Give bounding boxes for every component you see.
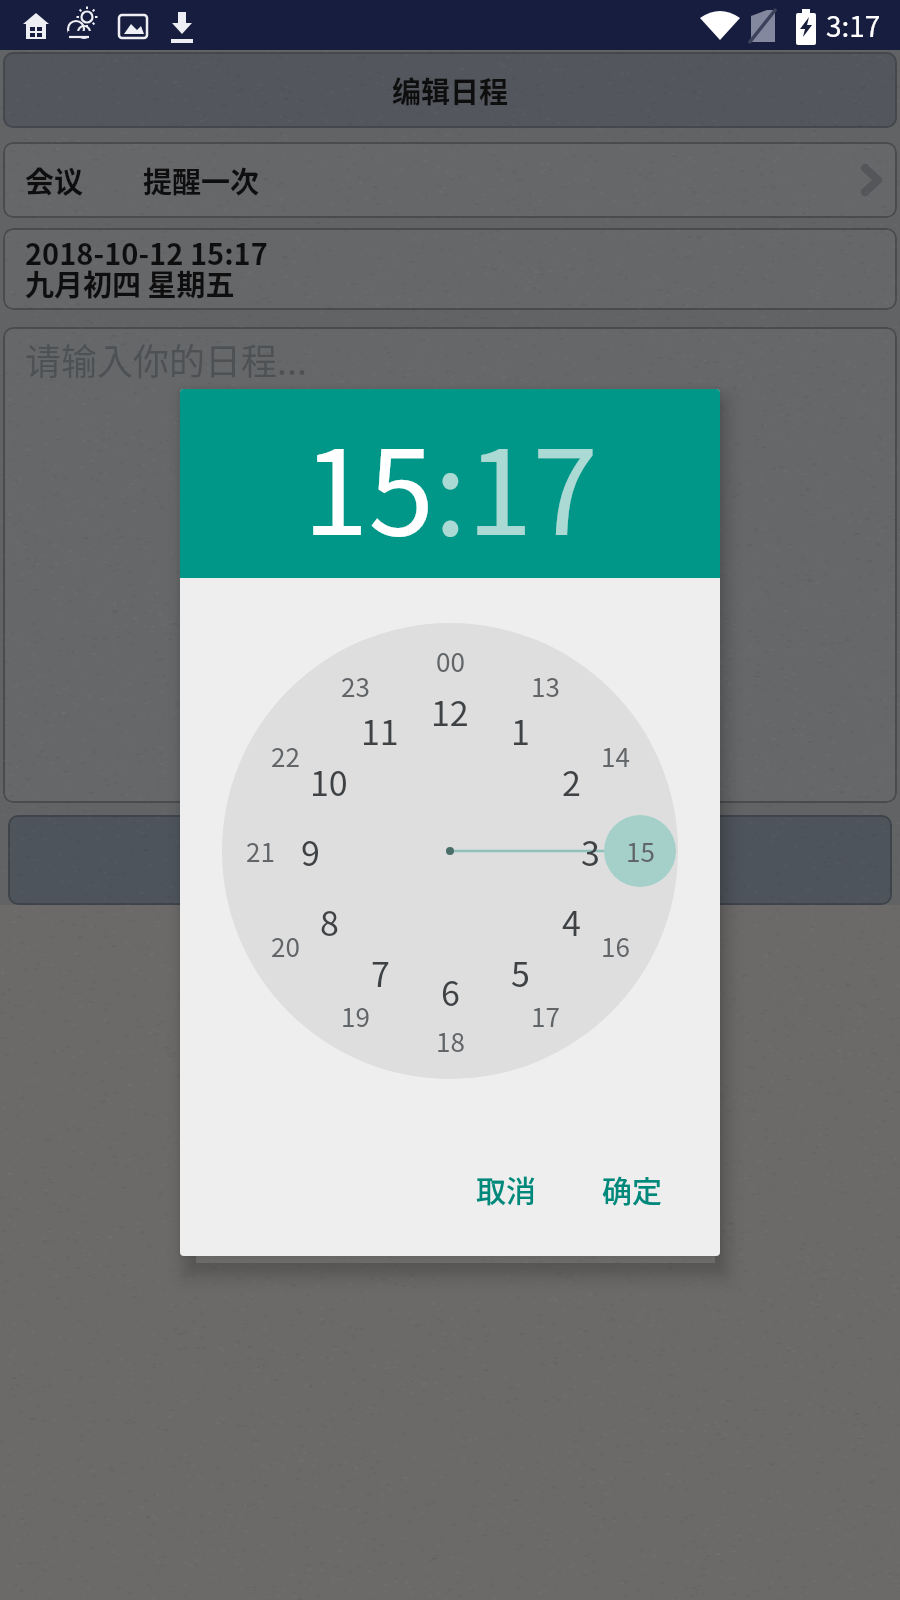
- staticText: 20: [271, 927, 300, 965]
- staticText: 4: [562, 897, 581, 945]
- staticText: 编辑日程: [392, 69, 509, 111]
- staticText: 1: [511, 706, 530, 754]
- staticText: 2: [562, 757, 581, 805]
- staticText: :: [434, 398, 467, 569]
- button[interactable]: 确定: [594, 1161, 670, 1216]
- staticText: 14: [601, 737, 630, 775]
- staticText: 九月初四 星期五: [25, 262, 235, 304]
- staticText: 取消: [476, 1167, 536, 1210]
- staticText: 7: [371, 948, 390, 996]
- staticText: 12: [431, 687, 469, 735]
- staticText: 17: [531, 997, 560, 1035]
- staticText: 10: [310, 757, 348, 805]
- staticText: 9: [301, 827, 320, 875]
- staticText: 3:17: [826, 5, 881, 46]
- staticText: 15: [303, 398, 434, 569]
- button[interactable]: 2018-10-12 15:17: [3, 228, 897, 310]
- staticText: 8: [320, 897, 339, 945]
- staticText: 11: [361, 706, 399, 754]
- staticText: 18: [436, 1022, 465, 1060]
- staticText: 13: [531, 667, 560, 705]
- staticText: 5: [511, 948, 530, 996]
- staticText: 会议: [25, 159, 84, 201]
- staticText: 19: [341, 997, 370, 1035]
- staticText: 请输入你的日程...: [25, 333, 308, 385]
- button[interactable]: [8, 815, 892, 905]
- button[interactable]: 取消: [468, 1161, 544, 1216]
- staticText: 6: [441, 967, 460, 1015]
- staticText: 17: [467, 398, 598, 569]
- staticText: 确定: [602, 1167, 662, 1210]
- staticText: 23: [341, 667, 370, 705]
- staticText: 00: [436, 642, 465, 680]
- staticText: 2018-10-12 15:17: [25, 231, 268, 273]
- staticText: 提醒一次: [143, 159, 260, 201]
- staticText: 16: [601, 927, 630, 965]
- button[interactable]: 请输入你的日程...: [3, 327, 897, 803]
- staticText: 21: [246, 832, 275, 870]
- staticText: 3: [581, 827, 600, 875]
- staticText: 22: [271, 737, 300, 775]
- staticText: 15: [626, 832, 655, 870]
- button[interactable]: 会议: [3, 142, 897, 218]
